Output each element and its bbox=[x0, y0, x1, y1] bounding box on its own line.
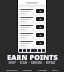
button[interactable] bbox=[19, 49, 22, 52]
button[interactable]: REWARDS bbox=[5, 67, 19, 72]
button[interactable] bbox=[42, 49, 45, 52]
button[interactable]: Redeem reward bbox=[36, 25, 44, 29]
staticText: SHOP · SCAN · REDEEM · REPEAT bbox=[8, 61, 56, 65]
button[interactable]: Redeem reward bbox=[36, 33, 44, 37]
button[interactable]: OFFERS bbox=[22, 67, 33, 72]
button[interactable]: Redeem reward bbox=[19, 32, 45, 38]
button[interactable] bbox=[31, 49, 34, 52]
button[interactable]: Redeem reward bbox=[36, 9, 44, 13]
button[interactable] bbox=[38, 49, 41, 52]
staticText: STORES bbox=[38, 68, 47, 71]
button[interactable]: Redeem reward bbox=[36, 17, 44, 21]
button[interactable]: HELP bbox=[51, 67, 59, 72]
button[interactable]: Redeem reward bbox=[19, 8, 45, 14]
staticText: OFFERS bbox=[23, 68, 32, 71]
button[interactable]: STORES bbox=[37, 67, 48, 72]
button[interactable] bbox=[27, 49, 30, 52]
button[interactable] bbox=[34, 49, 37, 52]
button[interactable]: Redeem reward bbox=[19, 24, 45, 30]
staticText: REWARDS bbox=[6, 68, 18, 71]
staticText: HELP bbox=[52, 68, 58, 71]
button[interactable]: Redeem reward bbox=[19, 40, 45, 46]
button[interactable] bbox=[23, 49, 26, 52]
button[interactable]: Redeem reward bbox=[19, 16, 45, 22]
button[interactable]: Redeem reward bbox=[36, 41, 44, 45]
staticText: EARN POINTS bbox=[7, 53, 58, 61]
